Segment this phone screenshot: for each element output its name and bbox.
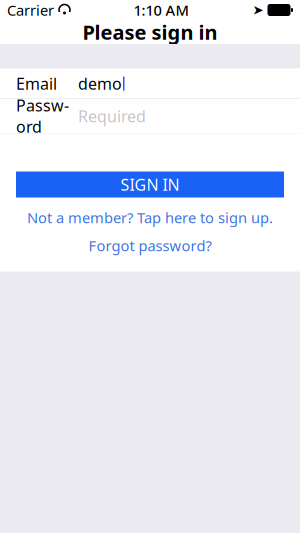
staticText: Password bbox=[16, 95, 69, 137]
staticText: Not a member? Tap here to sign up. bbox=[27, 208, 273, 227]
staticText: demo bbox=[78, 73, 122, 94]
staticText: Carrier bbox=[7, 0, 54, 20]
staticText: Forgot password? bbox=[88, 236, 211, 255]
button[interactable]: Password bbox=[0, 99, 300, 133]
button[interactable]: SIGN IN bbox=[16, 171, 284, 197]
staticText: Please sign in bbox=[82, 19, 217, 45]
staticText: ➤ bbox=[252, 2, 263, 17]
button[interactable]: Email bbox=[0, 68, 300, 98]
staticText: SIGN IN bbox=[120, 174, 179, 195]
button[interactable]: Not a member? Tap here to sign up. bbox=[16, 209, 284, 225]
staticText: Required bbox=[78, 105, 146, 127]
button[interactable]: Forgot password? bbox=[16, 237, 284, 253]
staticText: Email bbox=[16, 73, 57, 94]
staticText: 1:10 AM bbox=[133, 0, 188, 20]
